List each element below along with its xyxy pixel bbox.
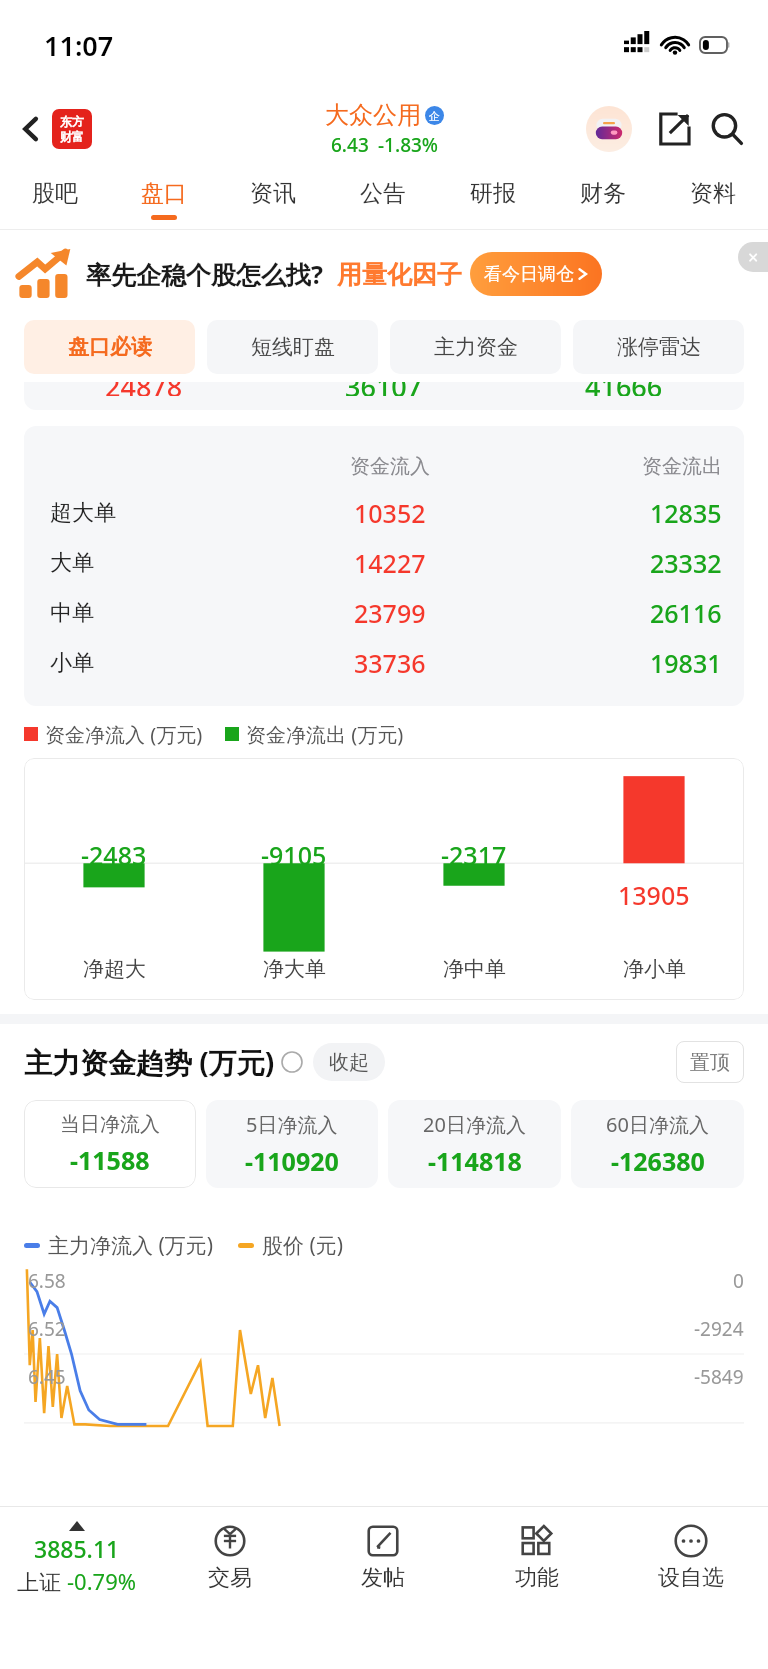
button[interactable]: 公告 bbox=[328, 168, 438, 230]
button[interactable]: 5日净流入 bbox=[206, 1100, 378, 1188]
staticText: 12835 bbox=[650, 496, 722, 530]
staticText: 资料 bbox=[690, 179, 736, 208]
button[interactable]: Share bbox=[654, 109, 694, 149]
staticText: 13905 bbox=[618, 878, 690, 912]
button[interactable]: 盘口必读 bbox=[24, 320, 195, 374]
button[interactable]: 看今日调仓 bbox=[470, 252, 602, 296]
staticText: 33736 bbox=[354, 646, 426, 680]
staticText: 资讯 bbox=[250, 179, 296, 208]
button[interactable]: Close ad bbox=[738, 242, 768, 272]
staticText: 6.43 bbox=[331, 132, 369, 158]
staticText: 6.45 bbox=[28, 1364, 66, 1390]
staticText: 5日净流入 bbox=[246, 1111, 338, 1138]
button[interactable]: Back bbox=[14, 109, 98, 149]
staticText: 20日净流入 bbox=[423, 1111, 526, 1138]
staticText: 10352 bbox=[354, 496, 426, 530]
staticText: 资金流入 bbox=[350, 454, 430, 479]
button[interactable]: Help bbox=[281, 1051, 303, 1073]
staticText: 企 bbox=[429, 109, 440, 123]
staticText: 发帖 bbox=[361, 1564, 405, 1592]
staticText: 主力资金 bbox=[434, 334, 518, 360]
staticText: 股吧 bbox=[32, 179, 78, 208]
staticText: 11:07 bbox=[44, 27, 114, 64]
button[interactable]: 率先企稳个股怎么找? bbox=[16, 230, 756, 318]
staticText: 交易 bbox=[208, 1564, 252, 1592]
button[interactable]: 交易 bbox=[153, 1507, 306, 1609]
staticText: 财务 bbox=[580, 179, 626, 208]
staticText: 6.52 bbox=[28, 1316, 66, 1342]
staticText: -2924 bbox=[694, 1316, 744, 1342]
staticText: 财富 bbox=[60, 129, 84, 144]
staticText: 资金流出 bbox=[642, 454, 722, 479]
staticText: -2483 bbox=[81, 838, 147, 872]
button[interactable]: 3885.11 bbox=[0, 1507, 153, 1609]
staticText: 24878 bbox=[105, 382, 183, 396]
staticText: 资金净流入 (万元) bbox=[45, 721, 203, 748]
staticText: -110920 bbox=[245, 1144, 339, 1178]
staticText: 23332 bbox=[650, 546, 722, 580]
button[interactable]: AI assistant bbox=[586, 106, 632, 152]
button[interactable]: 收起 bbox=[313, 1043, 385, 1081]
staticText: 19831 bbox=[650, 646, 722, 680]
button[interactable]: 资讯 bbox=[218, 168, 328, 230]
button[interactable]: 短线盯盘 bbox=[207, 320, 378, 374]
staticText: 主力净流入 (万元) bbox=[48, 1231, 214, 1260]
staticText: 资金净流出 (万元) bbox=[246, 721, 404, 748]
staticText: -11588 bbox=[70, 1143, 150, 1177]
staticText: 设自选 bbox=[658, 1564, 724, 1592]
staticText: -2317 bbox=[441, 838, 507, 872]
staticText: -126380 bbox=[611, 1144, 705, 1178]
staticText: 60日净流入 bbox=[606, 1111, 709, 1138]
staticText: 23799 bbox=[354, 596, 426, 630]
button[interactable]: 股吧 bbox=[0, 168, 109, 230]
staticText: 用量化因子 bbox=[337, 259, 462, 290]
button[interactable]: 置顶 bbox=[676, 1041, 744, 1083]
staticText: 当日净流入 bbox=[60, 1112, 160, 1137]
button[interactable]: 发帖 bbox=[306, 1507, 460, 1609]
staticText: 净小单 bbox=[623, 956, 686, 982]
button[interactable]: 60日净流入 bbox=[571, 1100, 744, 1188]
staticText: 功能 bbox=[515, 1564, 559, 1592]
staticText: 大众公用 bbox=[325, 100, 421, 130]
staticText: -0.79% bbox=[67, 1566, 137, 1596]
button[interactable]: 20日净流入 bbox=[388, 1100, 561, 1188]
staticText: -9105 bbox=[261, 838, 327, 872]
staticText: 盘口必读 bbox=[68, 334, 152, 360]
staticText: 收起 bbox=[329, 1050, 369, 1075]
staticText: -5849 bbox=[694, 1364, 744, 1390]
staticText: 41666 bbox=[585, 382, 663, 396]
staticText: 公告 bbox=[360, 179, 406, 208]
staticText: 大单 bbox=[50, 549, 94, 577]
button[interactable]: 设自选 bbox=[614, 1507, 768, 1609]
staticText: 小单 bbox=[50, 649, 94, 677]
staticText: 超大单 bbox=[50, 499, 116, 527]
staticText: 净中单 bbox=[443, 956, 506, 982]
button[interactable]: 盘口 bbox=[109, 168, 218, 230]
staticText: 上证 bbox=[17, 1566, 67, 1596]
staticText: 6.58 bbox=[28, 1268, 66, 1294]
staticText: 36107 bbox=[345, 382, 423, 396]
button[interactable]: 财务 bbox=[548, 168, 658, 230]
staticText: 率先企稳个股怎么找? bbox=[86, 257, 323, 291]
staticText: 涨停雷达 bbox=[617, 334, 701, 360]
staticText: 短线盯盘 bbox=[251, 334, 335, 360]
staticText: 看今日调仓 bbox=[484, 263, 574, 286]
button[interactable]: 功能 bbox=[460, 1507, 614, 1609]
staticText: 股价 (元) bbox=[262, 1231, 344, 1260]
staticText: -114818 bbox=[428, 1144, 522, 1178]
button[interactable]: 资料 bbox=[658, 168, 768, 230]
staticText: 东方 bbox=[60, 114, 84, 129]
staticText: 净大单 bbox=[263, 956, 326, 982]
button[interactable]: 当日净流入 bbox=[24, 1100, 196, 1188]
staticText: 置顶 bbox=[690, 1050, 730, 1075]
staticText: 0 bbox=[733, 1268, 744, 1294]
staticText: 中单 bbox=[50, 599, 94, 627]
staticText: 14227 bbox=[354, 546, 426, 580]
button[interactable]: Search bbox=[706, 108, 748, 150]
staticText: 净超大 bbox=[83, 956, 146, 982]
staticText: 3885.11 bbox=[34, 1533, 120, 1564]
button[interactable]: 主力资金 bbox=[390, 320, 561, 374]
button[interactable]: 研报 bbox=[438, 168, 548, 230]
button[interactable]: 涨停雷达 bbox=[573, 320, 744, 374]
staticText: 研报 bbox=[470, 179, 516, 208]
